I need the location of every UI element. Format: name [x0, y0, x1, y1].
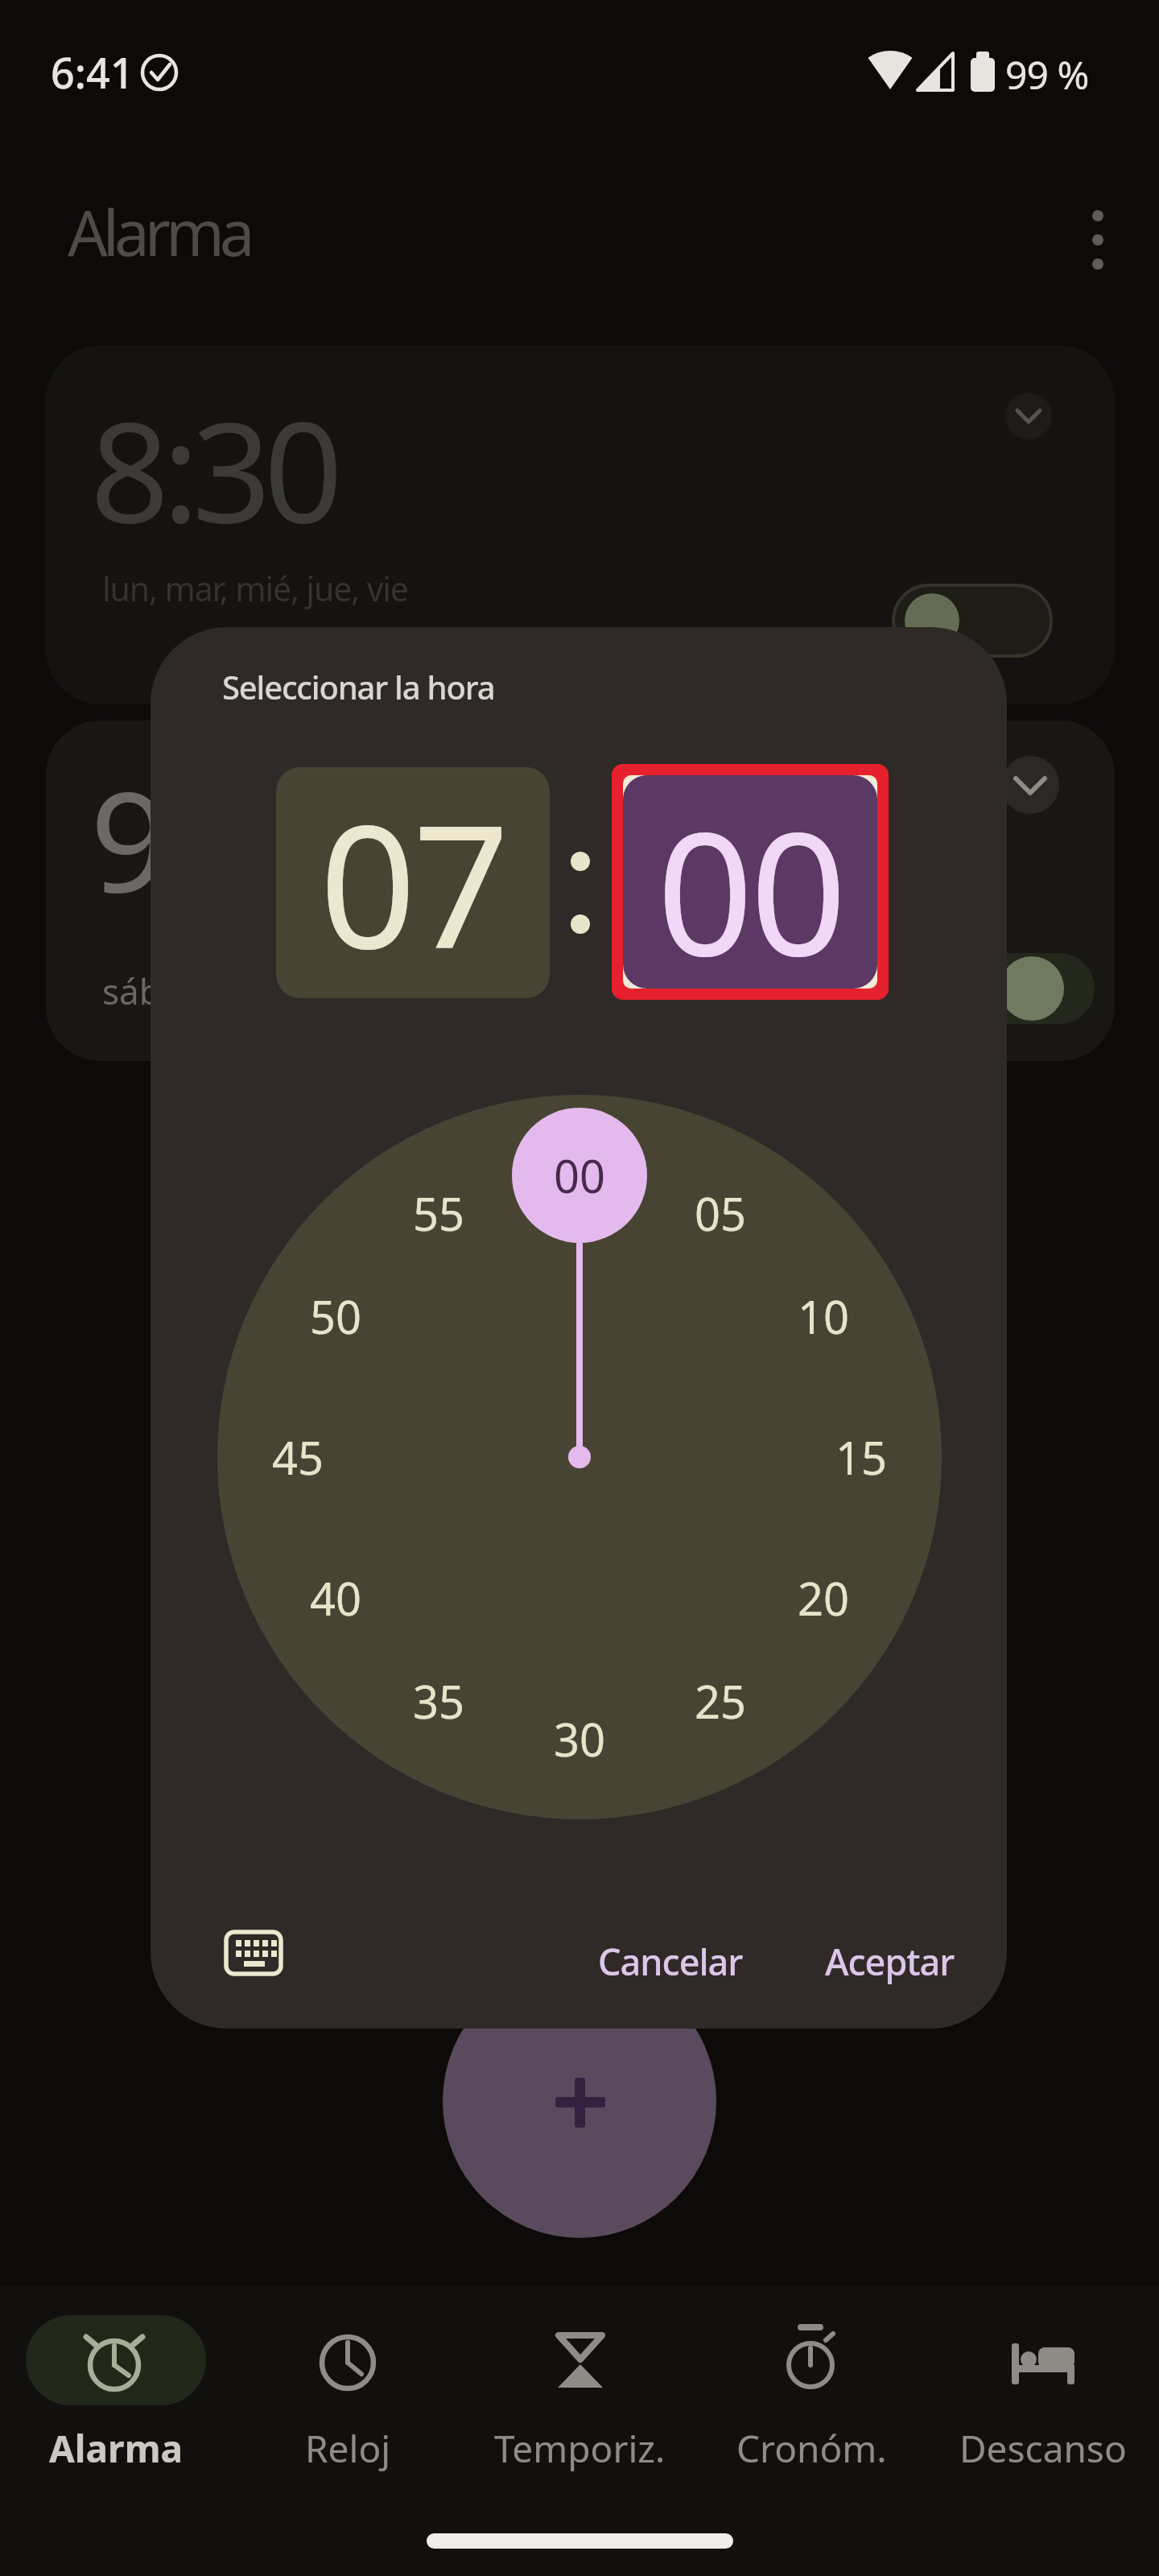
button[interactable] [211, 1918, 296, 1990]
staticText: 15 [835, 1426, 888, 1488]
staticText: 8:30 [90, 374, 336, 563]
staticText: Alarma [49, 2423, 184, 2474]
button[interactable] [46, 720, 1115, 1061]
staticText: 50 [310, 1286, 362, 1347]
button[interactable]: Aceptar [801, 1932, 978, 1990]
button[interactable] [0, 2294, 232, 2495]
staticText: 55 [413, 1183, 465, 1244]
button[interactable] [443, 1964, 716, 2238]
staticText: 45 [272, 1426, 324, 1488]
staticText: Aceptar [825, 1937, 955, 1986]
button[interactable] [927, 2294, 1159, 2495]
staticText: Seleccionar la hora [222, 665, 495, 708]
staticText: 00 [554, 1145, 606, 1206]
staticText: 6:41 [51, 43, 134, 101]
button[interactable]: Cancelar [582, 1932, 759, 1990]
button[interactable] [232, 2294, 464, 2495]
staticText: Descanso [959, 2423, 1127, 2474]
staticText: 30 [554, 1708, 606, 1769]
staticText: lun, mar, mié, jue, vie [102, 566, 408, 611]
staticText: 25 [695, 1670, 747, 1732]
staticText: 07 [320, 768, 507, 998]
staticText: Cancelar [598, 1937, 743, 1986]
button[interactable]: 07 [276, 767, 550, 998]
button[interactable] [464, 2294, 695, 2495]
staticText: Cronóm. [736, 2423, 887, 2474]
staticText: 40 [310, 1567, 362, 1629]
staticText: 35 [413, 1670, 465, 1732]
staticText: 9:00 [90, 744, 336, 932]
staticText: Alarma [68, 189, 250, 275]
staticText: Temporiz. [494, 2423, 666, 2474]
staticText: 10 [798, 1286, 850, 1347]
button[interactable] [612, 764, 889, 1000]
button[interactable] [695, 2294, 927, 2495]
staticText: 00 [657, 775, 844, 989]
staticText: Reloj [305, 2423, 391, 2474]
staticText: 05 [695, 1183, 747, 1244]
staticText: sáb [102, 967, 161, 1015]
staticText: 99 % [1005, 48, 1089, 101]
button[interactable] [46, 345, 1115, 704]
staticText: 20 [798, 1567, 850, 1629]
